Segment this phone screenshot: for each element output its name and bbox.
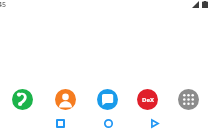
button[interactable]: Apps	[178, 89, 199, 110]
button[interactable]: Phone	[12, 89, 33, 110]
button[interactable]: Messages	[97, 89, 118, 110]
staticText: 45	[0, 0, 7, 10]
button[interactable]: Home	[100, 115, 116, 131]
button[interactable]: Contacts	[55, 89, 76, 110]
button[interactable]: Recent apps	[52, 115, 68, 131]
staticText: DeX	[142, 96, 154, 104]
button[interactable]: Back	[147, 115, 163, 131]
button[interactable]: DeX	[137, 89, 158, 110]
